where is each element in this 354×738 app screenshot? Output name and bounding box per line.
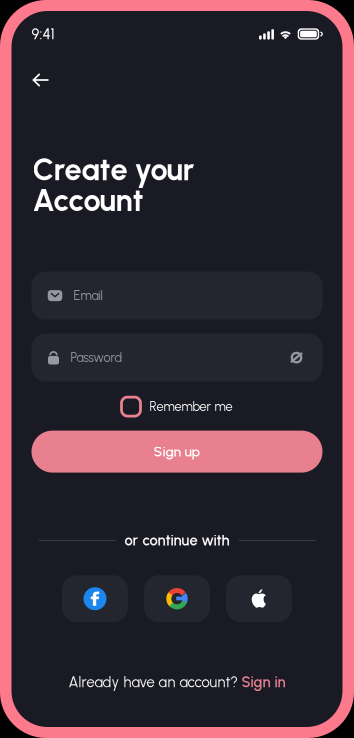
button[interactable]: Sign up with Google (144, 575, 210, 622)
button[interactable]: Back (11, 57, 91, 103)
button[interactable]: Show password (282, 344, 310, 372)
staticText: Sign up (153, 443, 200, 460)
button[interactable]: Sign up (31, 431, 322, 473)
staticText: Remember me (149, 399, 232, 414)
staticText: Create your Account (32, 151, 194, 219)
staticText: or continue with (124, 532, 229, 549)
button[interactable]: Sign up with Apple (226, 575, 292, 622)
staticText: Email (73, 288, 102, 303)
staticText: Sign in (241, 673, 285, 691)
button[interactable]: Sign up with Facebook (62, 575, 128, 622)
staticText: 9:41 (31, 25, 54, 43)
staticText: Password (70, 350, 122, 365)
button[interactable]: Remember me (121, 397, 232, 416)
staticText: Already have an account? (68, 673, 237, 691)
button[interactable]: Sign in (241, 673, 285, 691)
